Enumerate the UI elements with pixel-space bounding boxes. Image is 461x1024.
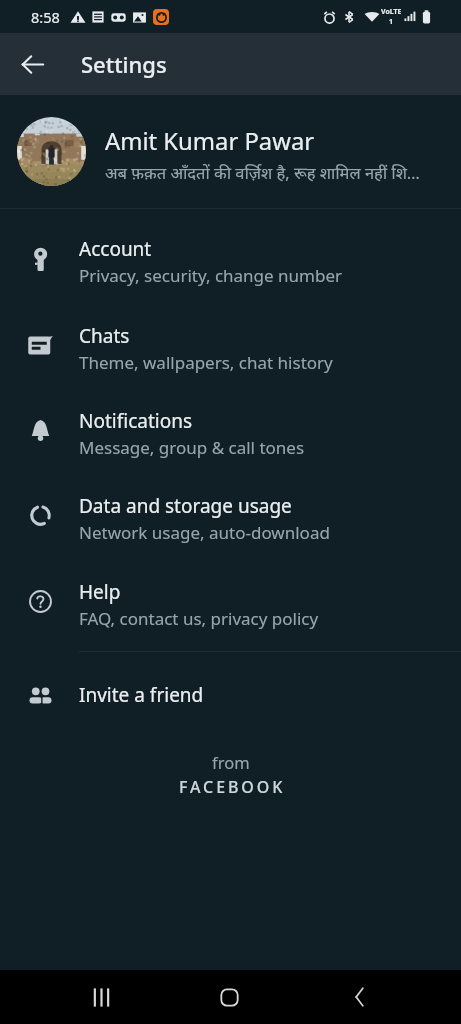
button[interactable]: Invite a friend	[0, 666, 461, 724]
staticText: Theme, wallpapers, chat history	[79, 351, 333, 374]
button[interactable]: Back	[336, 973, 384, 1021]
staticText: from	[212, 751, 250, 773]
staticText: Amit Kumar Pawar	[105, 125, 315, 157]
staticText: Data and storage usage	[79, 493, 292, 519]
staticText: Help	[79, 579, 121, 605]
staticText: अब फ़क़त आँदतों की वर्ज़िश है, रूह शामिल…	[105, 161, 420, 183]
staticText: Privacy, security, change number	[79, 264, 343, 287]
staticText: Account	[79, 236, 152, 262]
button[interactable]: Chats	[0, 306, 461, 391]
button[interactable]: Recents	[77, 973, 125, 1021]
staticText: Message, group & call tones	[79, 436, 305, 459]
button[interactable]: Back	[12, 44, 52, 84]
staticText: FAQ, contact us, privacy policy	[79, 607, 319, 630]
staticText: FACEBOOK	[179, 776, 286, 798]
staticText: Network usage, auto-download	[79, 521, 330, 544]
button[interactable]: Notifications	[0, 391, 461, 476]
button[interactable]: Amit Kumar Pawar	[0, 95, 461, 208]
staticText: Invite a friend	[79, 682, 204, 708]
button[interactable]: Data and storage usage	[0, 476, 461, 561]
staticText: Notifications	[79, 408, 193, 434]
staticText: Settings	[81, 49, 167, 79]
staticText: VoLTE	[381, 7, 402, 17]
staticText: Chats	[79, 323, 130, 349]
button[interactable]: Home	[205, 973, 253, 1021]
button[interactable]: Account	[0, 219, 461, 304]
staticText: 1	[389, 17, 394, 27]
button[interactable]: Help	[0, 562, 461, 647]
staticText: 8:58	[31, 7, 60, 27]
